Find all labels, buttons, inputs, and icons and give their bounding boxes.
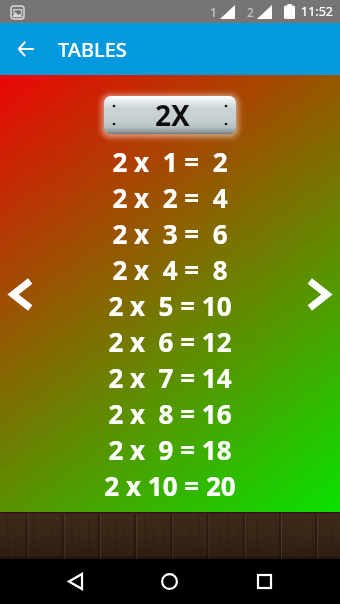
staticText: 2 x 7 = 14	[108, 360, 232, 395]
staticText: 2 x 5 = 10	[108, 288, 232, 323]
staticText: 1	[210, 4, 217, 20]
staticText: 2 x 6 = 12	[108, 324, 232, 359]
staticText: 11:52	[301, 3, 333, 20]
staticText: 2	[247, 4, 254, 20]
staticText: 2X	[155, 96, 190, 134]
staticText: 2 x 9 = 18	[108, 432, 232, 467]
button[interactable]: Back	[0, 23, 52, 75]
button[interactable]: Back	[53, 559, 98, 604]
staticText: 2 x 4 = 8	[112, 252, 228, 287]
button[interactable]: Previous table	[0, 271, 46, 317]
staticText: 2 x 10 = 20	[104, 468, 236, 503]
button[interactable]: Recent apps	[242, 559, 287, 604]
button[interactable]: 2X	[104, 96, 236, 134]
staticText: 2 x 3 = 6	[112, 216, 228, 251]
staticText: TABLES	[58, 36, 127, 63]
staticText: 2 x 2 = 4	[112, 180, 228, 215]
button[interactable]: Home	[147, 559, 192, 604]
staticText: 2 x 8 = 16	[108, 396, 232, 431]
button[interactable]: Next table	[294, 271, 340, 317]
staticText: 2 x 1 = 2	[112, 144, 228, 179]
